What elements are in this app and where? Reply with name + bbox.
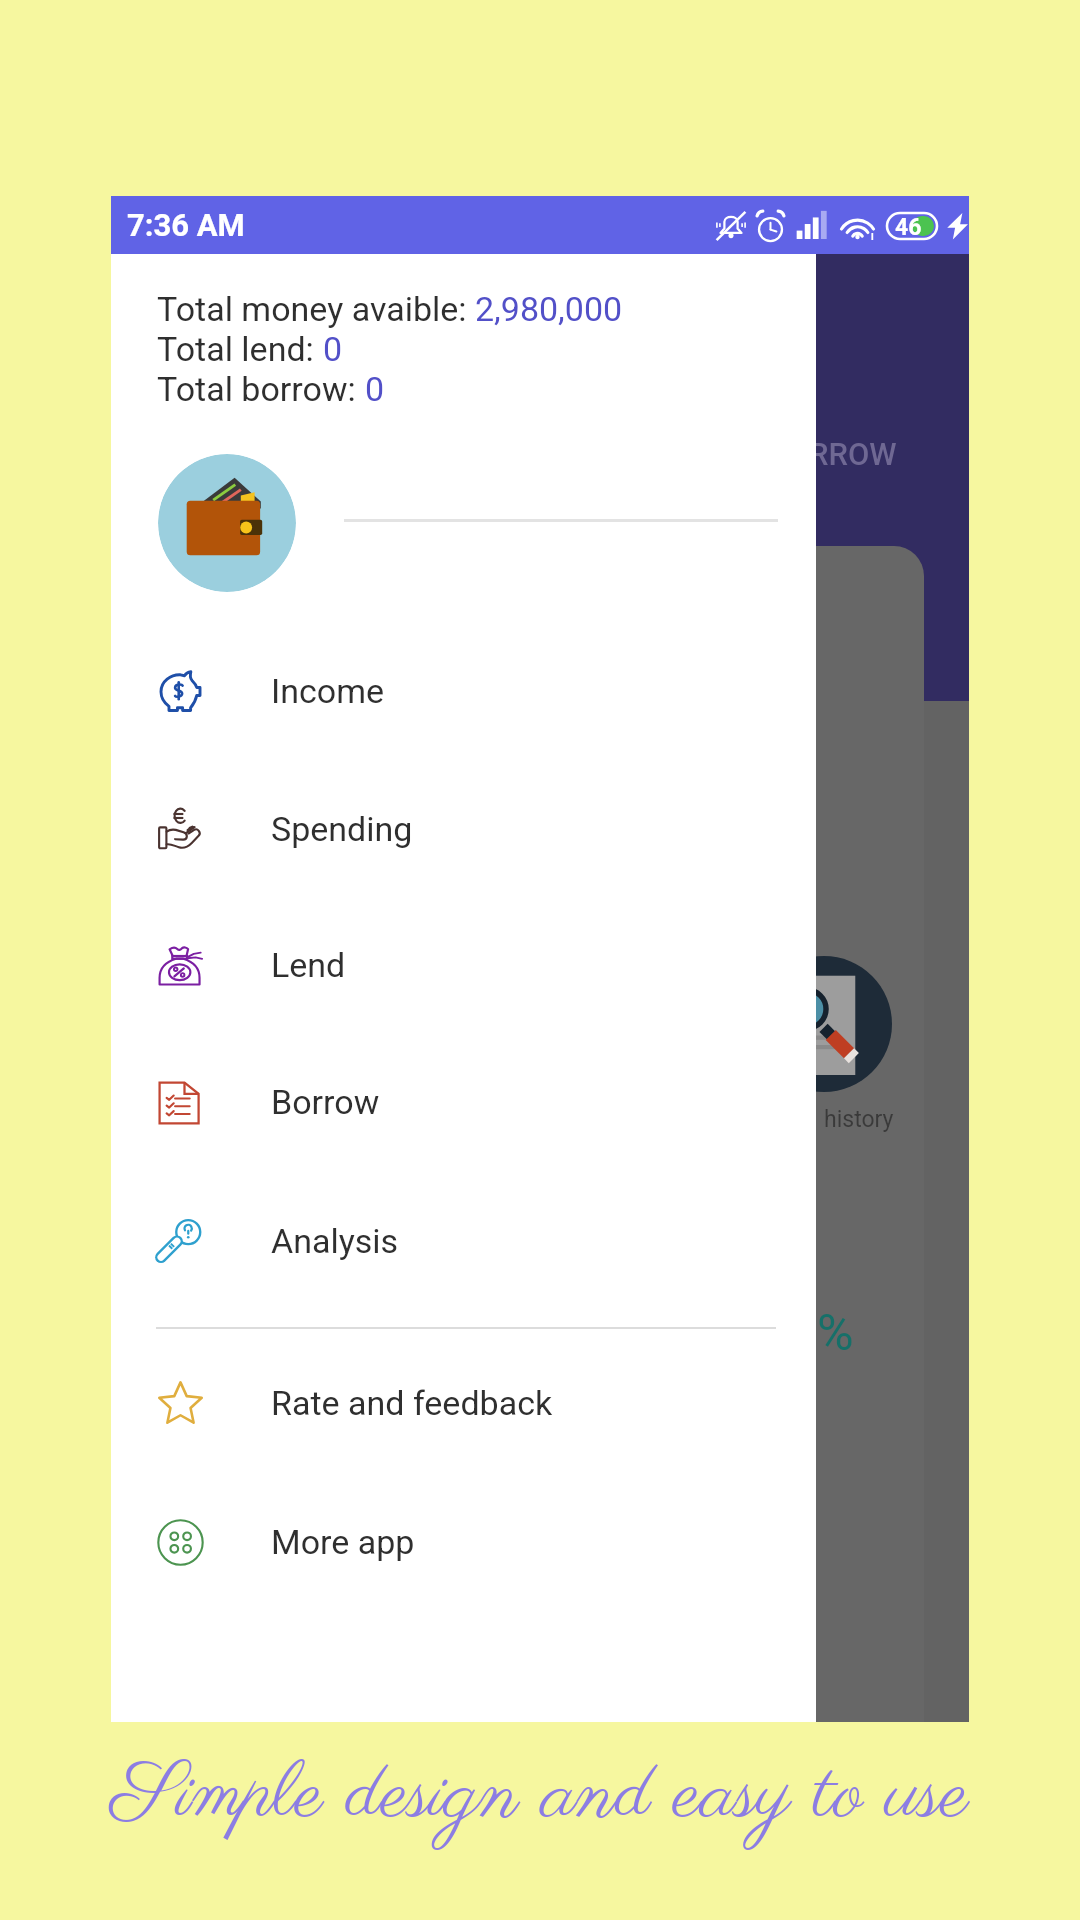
staticText: Total lend:	[157, 329, 323, 369]
staticText: 2,980,000	[475, 289, 623, 329]
button[interactable]: Income	[111, 623, 816, 759]
staticText: 7:36 AM	[127, 207, 245, 243]
staticText: Analysis	[271, 1221, 399, 1261]
staticText: Total money avaible:	[157, 289, 475, 329]
button[interactable]: More app	[111, 1474, 816, 1610]
button[interactable]: Wallet profile	[158, 454, 296, 592]
button[interactable]: Borrow	[111, 1034, 816, 1170]
staticText: Borrow	[271, 1082, 380, 1122]
staticText: Lend	[271, 945, 346, 985]
staticText: Rate and feedback	[271, 1383, 553, 1423]
staticText: 0%	[789, 1304, 854, 1363]
staticText: Simple design and easy to use	[111, 1744, 969, 1850]
staticText: Spending	[271, 809, 413, 849]
staticText: BORROW	[768, 436, 897, 472]
staticText: 0	[323, 329, 343, 369]
staticText: Total borrow:	[157, 369, 365, 409]
button[interactable]: Spending	[111, 761, 816, 897]
staticText: 46	[895, 214, 922, 241]
staticText: 0	[365, 369, 385, 409]
staticText: history	[824, 1106, 894, 1133]
button[interactable]: Rate and feedback	[111, 1335, 816, 1471]
button[interactable]: Lend	[111, 897, 816, 1033]
staticText: More app	[271, 1522, 415, 1562]
button[interactable]: Analysis	[111, 1173, 816, 1309]
staticText: Income	[271, 671, 385, 711]
